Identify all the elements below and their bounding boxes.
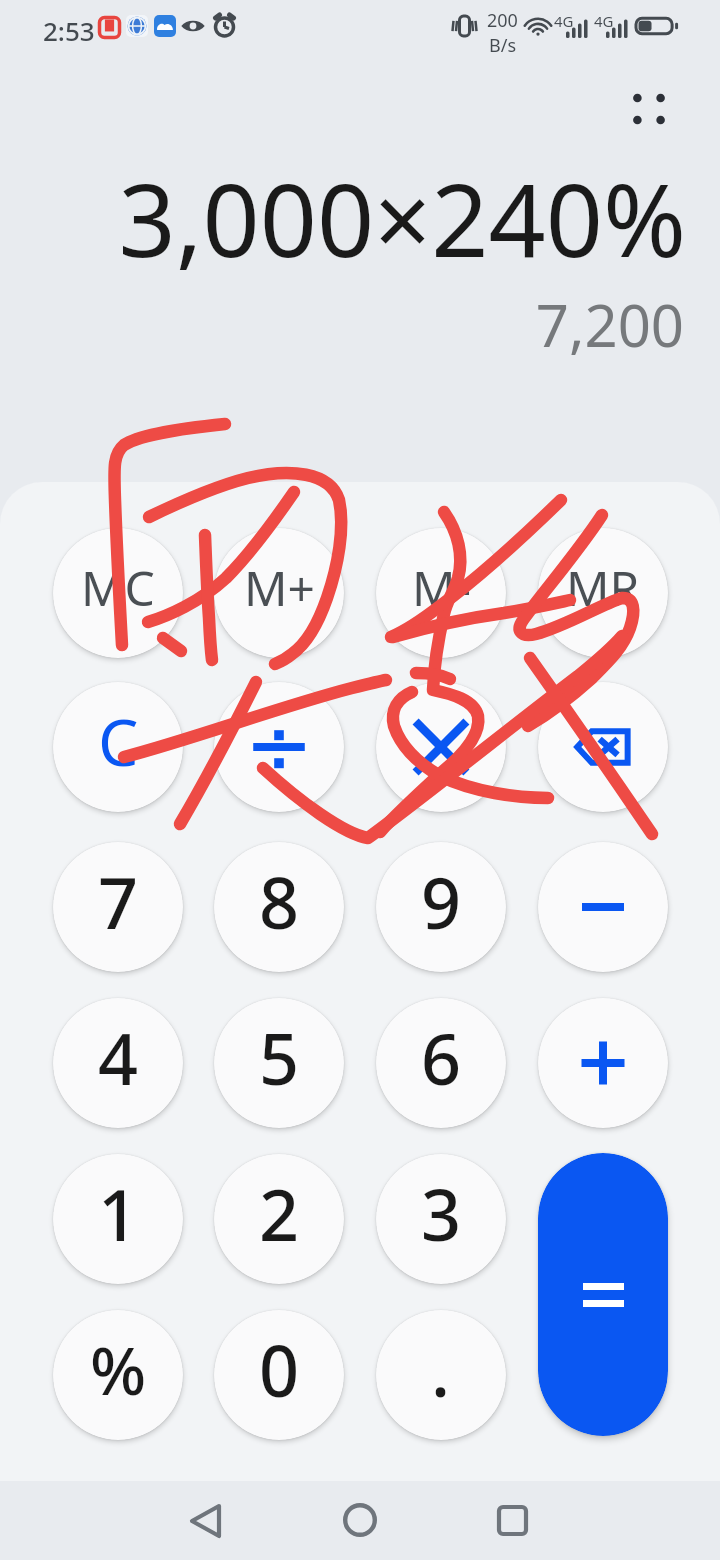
- staticText: MC: [81, 555, 155, 620]
- button[interactable]: 8: [214, 842, 344, 972]
- staticText: 9: [421, 854, 462, 949]
- button[interactable]: Minus: [538, 842, 668, 972]
- button[interactable]: 2: [214, 1154, 344, 1284]
- staticText: 4G: [594, 11, 614, 31]
- staticText: C: [98, 698, 139, 785]
- button[interactable]: 4: [53, 998, 183, 1128]
- button[interactable]: .: [376, 1310, 506, 1440]
- staticText: 6: [421, 1010, 462, 1105]
- button[interactable]: Plus: [538, 998, 668, 1128]
- button[interactable]: 5: [214, 998, 344, 1128]
- staticText: 2:53: [43, 13, 95, 48]
- button[interactable]: Back: [159, 1481, 251, 1560]
- button[interactable]: M-: [376, 528, 506, 658]
- button[interactable]: Divide: [214, 682, 344, 812]
- staticText: B/s: [489, 33, 517, 58]
- staticText: 3,000×240%: [118, 150, 686, 286]
- staticText: 5: [259, 1010, 300, 1105]
- button[interactable]: M+: [214, 528, 344, 658]
- button[interactable]: 1: [53, 1154, 183, 1284]
- button[interactable]: C: [53, 682, 183, 812]
- button[interactable]: Home: [314, 1481, 406, 1559]
- button[interactable]: 9: [376, 842, 506, 972]
- staticText: .: [431, 1322, 451, 1417]
- staticText: 0: [259, 1322, 300, 1417]
- staticText: 7,200: [535, 285, 684, 364]
- staticText: 2: [259, 1166, 300, 1261]
- staticText: 7: [98, 854, 139, 949]
- staticText: M-: [412, 555, 471, 620]
- button[interactable]: Multiply: [376, 682, 506, 812]
- staticText: 200: [487, 8, 518, 33]
- staticText: 4: [98, 1010, 139, 1105]
- button[interactable]: MC: [53, 528, 183, 658]
- staticText: M+: [244, 555, 315, 620]
- button[interactable]: %: [53, 1310, 183, 1440]
- button[interactable]: 7: [53, 842, 183, 972]
- button[interactable]: More options: [605, 65, 693, 153]
- button[interactable]: Equals: [538, 1153, 668, 1436]
- staticText: 8: [259, 854, 300, 949]
- staticText: 4G: [554, 11, 574, 31]
- button[interactable]: Recents: [466, 1481, 558, 1559]
- button[interactable]: 0: [214, 1310, 344, 1440]
- staticText: 3: [421, 1166, 462, 1261]
- button[interactable]: Backspace: [538, 682, 668, 812]
- button[interactable]: 6: [376, 998, 506, 1128]
- staticText: 1: [98, 1166, 139, 1261]
- staticText: %: [90, 1324, 147, 1414]
- button[interactable]: MR: [538, 528, 668, 658]
- button[interactable]: 3: [376, 1154, 506, 1284]
- staticText: MR: [566, 555, 640, 620]
